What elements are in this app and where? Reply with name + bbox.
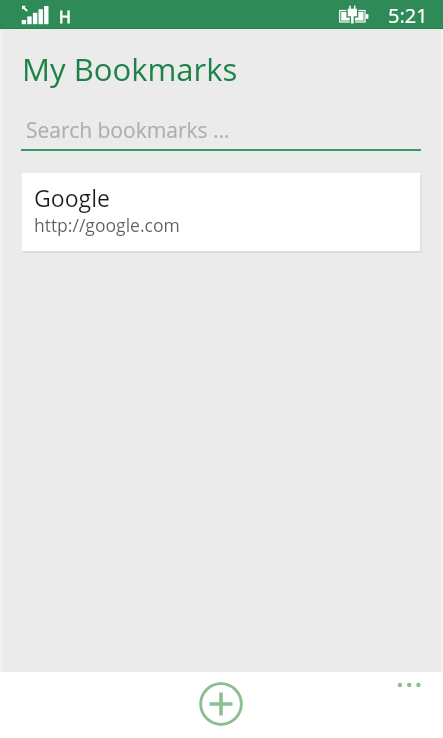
button[interactable]: Add bookmark bbox=[199, 682, 243, 726]
staticText: 5:21 bbox=[388, 2, 428, 29]
staticText: http://google.com bbox=[34, 213, 180, 237]
staticText: Google bbox=[34, 182, 110, 213]
staticText: H bbox=[59, 6, 71, 28]
staticText: Search bookmarks … bbox=[26, 116, 230, 145]
button[interactable]: More options bbox=[388, 672, 430, 698]
button[interactable]: Google bbox=[22, 173, 420, 251]
staticText: My Bookmarks bbox=[22, 48, 238, 90]
button[interactable]: Search bookmarks … bbox=[21, 112, 421, 152]
